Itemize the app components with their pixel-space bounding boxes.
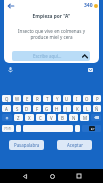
button[interactable]: Symbols (2, 125, 14, 132)
button[interactable]: N (69, 114, 78, 121)
staticText: H (55, 106, 59, 112)
staticText: F (36, 106, 39, 112)
button[interactable]: P (93, 95, 101, 102)
button[interactable]: Enter (82, 125, 101, 132)
button[interactable]: L (83, 105, 91, 112)
button[interactable]: Ñ (93, 105, 101, 112)
staticText: M (83, 115, 87, 121)
button[interactable]: Recents (72, 169, 86, 183)
staticText: Pasapalabra (14, 142, 40, 148)
button[interactable]: Aceptar (57, 140, 92, 150)
staticText: V (50, 115, 53, 121)
button[interactable]: K (73, 105, 81, 112)
staticText: L (86, 106, 89, 112)
button[interactable]: A (2, 105, 11, 112)
button[interactable]: Y (53, 95, 61, 102)
staticText: B (61, 115, 64, 121)
staticText: Escribe aquí... (33, 53, 62, 59)
button[interactable]: Backspace (91, 114, 101, 121)
staticText: I (76, 96, 78, 102)
button[interactable]: Voice input (7, 66, 14, 73)
staticText: D (25, 106, 29, 112)
staticText: T (46, 96, 49, 102)
staticText: P (96, 96, 99, 102)
button[interactable]: I (73, 95, 81, 102)
button[interactable]: D (23, 105, 31, 112)
staticText: Aceptar (67, 142, 83, 148)
button[interactable]: V (47, 114, 56, 121)
button[interactable]: Period (75, 125, 80, 132)
button[interactable]: H (53, 105, 61, 112)
button[interactable]: X (25, 114, 34, 121)
button[interactable]: Escribe aquí... (12, 51, 90, 61)
staticText: Y (56, 96, 59, 102)
staticText: J (66, 106, 68, 112)
button[interactable]: Shift (2, 114, 12, 121)
button[interactable]: Back (4, 0, 17, 12)
staticText: Ñ (95, 106, 99, 112)
staticText: Z (17, 115, 20, 121)
staticText: Empieza por "A" (4, 13, 99, 20)
button[interactable]: J (63, 105, 71, 112)
button[interactable]: Z (14, 114, 23, 121)
staticText: N (72, 115, 76, 121)
staticText: Insecto que vive en colmenas y produce m… (4, 28, 99, 40)
button[interactable]: U (63, 95, 71, 102)
button[interactable]: T (43, 95, 51, 102)
staticText: K (76, 106, 79, 112)
button[interactable]: G (43, 105, 51, 112)
staticText: ?1© (4, 126, 12, 131)
staticText: X (28, 115, 31, 121)
button[interactable]: F (33, 105, 41, 112)
button[interactable]: E (23, 95, 31, 102)
staticText: E (26, 96, 29, 102)
button[interactable]: Back (18, 169, 32, 183)
staticText: W (15, 96, 20, 102)
button[interactable]: Home (45, 169, 59, 183)
button[interactable]: S (13, 105, 21, 112)
button[interactable]: Q (2, 95, 11, 102)
staticText: C (39, 115, 42, 121)
staticText: Q (5, 96, 9, 102)
button[interactable]: Pasapalabra (9, 140, 44, 150)
button[interactable]: R (33, 95, 41, 102)
staticText: U (65, 96, 69, 102)
staticText: 340 (84, 2, 93, 9)
button[interactable]: C (36, 114, 45, 121)
button[interactable]: O (83, 95, 91, 102)
staticText: G (45, 106, 49, 112)
staticText: O (85, 96, 89, 102)
staticText: S (16, 106, 19, 112)
staticText: R (36, 96, 39, 102)
button[interactable]: Space (23, 125, 73, 132)
staticText: A (5, 106, 8, 112)
button[interactable]: B (58, 114, 67, 121)
button[interactable]: Keyboard settings (88, 68, 93, 72)
button[interactable]: W (13, 95, 21, 102)
button[interactable]: 340 (84, 2, 98, 9)
button[interactable]: Comma (16, 125, 21, 132)
button[interactable]: M (80, 114, 89, 121)
